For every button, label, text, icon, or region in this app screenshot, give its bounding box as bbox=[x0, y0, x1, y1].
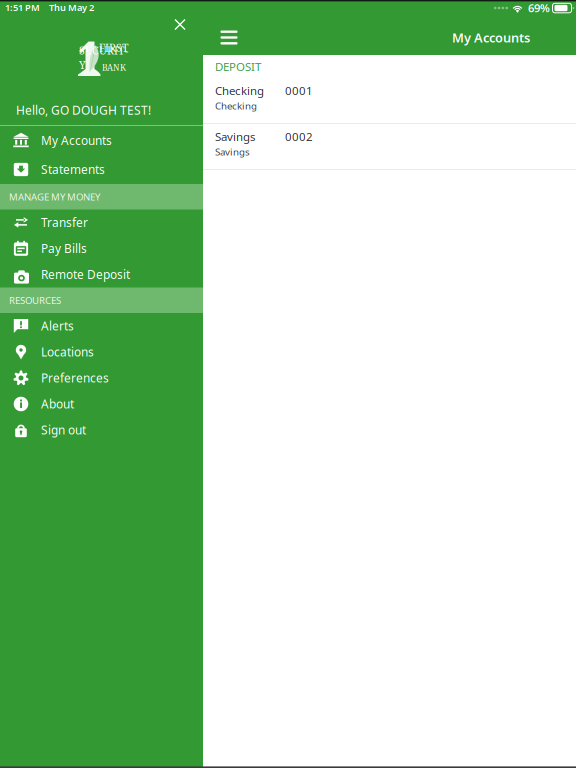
staticText: 69% bbox=[528, 0, 550, 16]
staticText: Alerts bbox=[41, 318, 74, 334]
staticText: Checking bbox=[215, 99, 257, 112]
staticText: Sign out bbox=[41, 422, 86, 438]
staticText: RESOURCES bbox=[9, 294, 61, 307]
staticText: Remote Deposit bbox=[41, 266, 130, 283]
staticText: Checking bbox=[215, 83, 264, 98]
staticText: SECURITY bbox=[79, 43, 128, 72]
staticText: About bbox=[41, 396, 74, 412]
staticText: Savings bbox=[215, 129, 255, 144]
staticText: Hello, GO DOUGH TEST! bbox=[16, 102, 151, 118]
staticText: 0001 bbox=[285, 83, 313, 98]
button[interactable]: Remote Deposit bbox=[0, 261, 203, 287]
staticText: 0002 bbox=[285, 129, 313, 144]
staticText: BANK bbox=[102, 62, 126, 73]
button[interactable]: Locations bbox=[0, 339, 203, 365]
staticText: Thu May 2 bbox=[49, 1, 94, 14]
staticText: 1:51 PM bbox=[5, 1, 40, 14]
staticText: MANAGE MY MONEY bbox=[9, 190, 100, 203]
button[interactable]: Statements bbox=[0, 155, 203, 184]
staticText: Transfer bbox=[41, 214, 88, 231]
button[interactable]: About bbox=[0, 391, 203, 417]
staticText: Pay Bills bbox=[41, 240, 87, 257]
staticText: My Accounts bbox=[452, 29, 530, 46]
button[interactable]: Checking bbox=[203, 78, 576, 123]
button[interactable]: Alerts bbox=[0, 313, 203, 339]
button[interactable]: Pay Bills bbox=[0, 235, 203, 261]
staticText: Savings bbox=[215, 145, 250, 158]
button[interactable]: Preferences bbox=[0, 365, 203, 391]
button[interactable]: Close menu bbox=[163, 10, 197, 38]
staticText: Statements bbox=[41, 161, 105, 178]
staticText: Locations bbox=[41, 344, 94, 360]
button[interactable]: Transfer bbox=[0, 209, 203, 235]
button[interactable]: Sign out bbox=[0, 417, 203, 443]
staticText: My Accounts bbox=[41, 132, 112, 149]
staticText: FIRST bbox=[99, 40, 129, 55]
staticText: Preferences bbox=[41, 370, 109, 386]
button[interactable]: Savings bbox=[203, 124, 576, 169]
button[interactable]: Menu bbox=[209, 20, 249, 55]
staticText: DEPOSIT bbox=[215, 59, 261, 74]
button[interactable]: My Accounts bbox=[0, 126, 203, 155]
